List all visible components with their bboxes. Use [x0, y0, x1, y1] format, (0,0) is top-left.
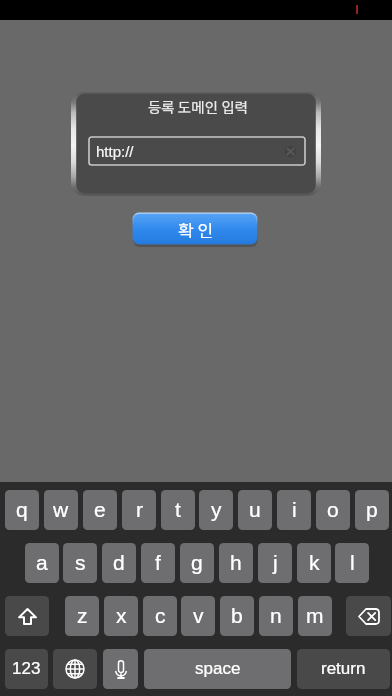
button[interactable]: d: [102, 543, 136, 583]
staticText: 123: [12, 659, 41, 678]
staticText: g: [191, 551, 203, 574]
staticText: a: [36, 551, 48, 574]
staticText: i: [292, 498, 297, 521]
staticText: f: [155, 551, 161, 574]
staticText: b: [231, 604, 243, 627]
staticText: k: [309, 551, 320, 574]
staticText: o: [327, 498, 339, 521]
button[interactable]: q: [5, 490, 39, 530]
button[interactable]: y: [199, 490, 233, 530]
button[interactable]: p: [355, 490, 389, 530]
button[interactable]: b: [220, 596, 254, 636]
button[interactable]: z: [65, 596, 99, 636]
staticText: j: [273, 551, 278, 574]
button[interactable]: 123: [5, 649, 48, 689]
button[interactable]: t: [161, 490, 195, 530]
button[interactable]: w: [44, 490, 78, 530]
staticText: n: [270, 604, 282, 627]
button[interactable]: u: [238, 490, 272, 530]
staticText: y: [211, 498, 222, 521]
staticText: m: [306, 604, 324, 627]
button[interactable]: g: [180, 543, 214, 583]
button[interactable]: k: [297, 543, 331, 583]
staticText: u: [249, 498, 261, 521]
button[interactable]: c: [143, 596, 177, 636]
staticText: q: [16, 498, 28, 521]
button[interactable]: s: [63, 543, 97, 583]
button[interactable]: e: [83, 490, 117, 530]
button[interactable]: r: [122, 490, 156, 530]
staticText: space: [195, 659, 241, 678]
button[interactable]: 확 인: [132, 212, 259, 247]
staticText: http://: [96, 143, 134, 160]
staticText: 등록 도메인 입력: [73, 96, 323, 117]
button[interactable]: f: [141, 543, 175, 583]
staticText: d: [113, 551, 125, 574]
button[interactable]: i: [277, 490, 311, 530]
staticText: return: [321, 659, 366, 678]
staticText: 확 인: [178, 217, 214, 242]
staticText: t: [175, 498, 181, 521]
staticText: v: [193, 604, 204, 627]
button[interactable]: a: [25, 543, 59, 583]
button[interactable]: n: [259, 596, 293, 636]
button[interactable]: m: [298, 596, 332, 636]
button[interactable]: space: [144, 649, 291, 689]
staticText: w: [53, 498, 69, 521]
staticText: x: [116, 604, 127, 627]
button[interactable]: Dictation: [103, 649, 138, 689]
button[interactable]: x: [104, 596, 138, 636]
staticText: s: [75, 551, 86, 574]
button[interactable]: Clear text: [284, 145, 297, 158]
staticText: c: [155, 604, 166, 627]
button[interactable]: Next keyboard: [53, 649, 97, 689]
button[interactable]: v: [181, 596, 215, 636]
staticText: r: [136, 498, 143, 521]
button[interactable]: Shift: [5, 596, 49, 636]
button[interactable]: j: [258, 543, 292, 583]
staticText: p: [366, 498, 378, 521]
button[interactable]: Backspace: [346, 596, 391, 636]
button[interactable]: l: [335, 543, 369, 583]
button[interactable]: h: [219, 543, 253, 583]
staticText: l: [350, 551, 355, 574]
staticText: e: [94, 498, 106, 521]
staticText: h: [230, 551, 242, 574]
button[interactable]: o: [316, 490, 350, 530]
button[interactable]: return: [297, 649, 390, 689]
staticText: z: [77, 604, 88, 627]
